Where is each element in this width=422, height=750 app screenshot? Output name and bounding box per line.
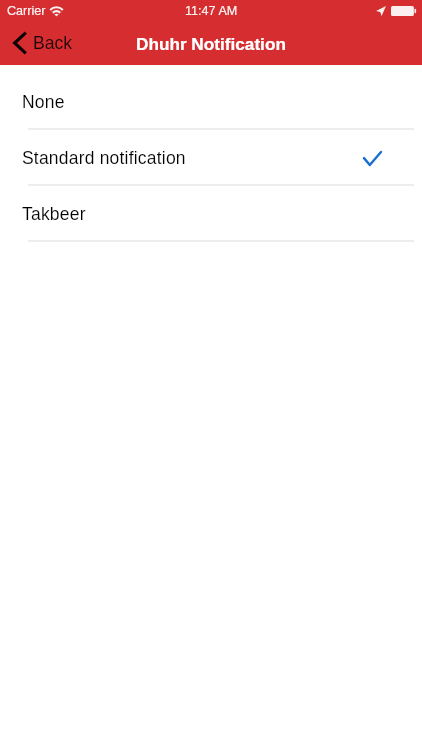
- staticText: 11:47 AM: [185, 4, 238, 18]
- button[interactable]: Back: [0, 27, 85, 59]
- staticText: Dhuhr Notification: [136, 34, 286, 53]
- staticText: Takbeer: [22, 204, 86, 224]
- button[interactable]: Standard notification: [0, 130, 422, 186]
- button[interactable]: None: [0, 74, 422, 130]
- staticText: Back: [33, 33, 73, 53]
- staticText: Standard notification: [22, 148, 186, 168]
- staticText: Carrier: [7, 4, 46, 18]
- button[interactable]: Takbeer: [0, 186, 422, 242]
- staticText: None: [22, 92, 65, 112]
